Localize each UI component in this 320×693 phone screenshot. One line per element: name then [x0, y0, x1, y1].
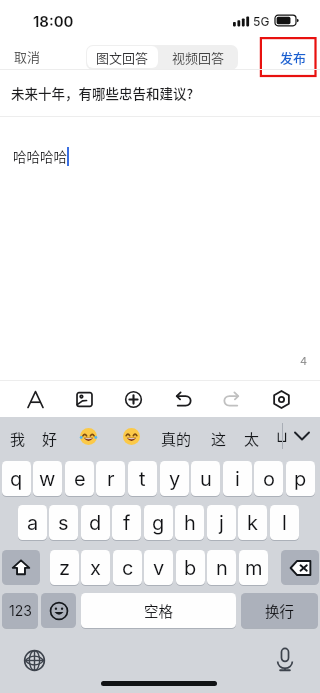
button[interactable]: Undo	[165, 381, 201, 417]
button[interactable]: c	[113, 550, 142, 585]
button[interactable]: v	[144, 550, 173, 585]
button[interactable]: h	[175, 505, 204, 540]
button[interactable]: i	[223, 461, 252, 496]
staticText: 太	[244, 428, 260, 450]
staticText: 视频回答	[172, 48, 225, 67]
button[interactable]: q	[2, 461, 31, 496]
button[interactable]: Settings	[263, 381, 299, 417]
button[interactable]: 真的	[158, 424, 195, 454]
staticText: u	[200, 467, 212, 491]
staticText: ⊔	[276, 428, 288, 445]
staticText: v	[153, 556, 165, 580]
staticText: z	[59, 556, 71, 580]
button[interactable]: t	[128, 461, 157, 496]
staticText: 未来十年，有哪些忠告和建议?	[11, 83, 194, 103]
button[interactable]: a	[18, 505, 47, 540]
button[interactable]: 好	[39, 424, 61, 454]
button[interactable]: 123	[2, 593, 38, 628]
button[interactable]: Change language	[22, 648, 46, 672]
button[interactable]: 空格	[81, 593, 236, 628]
button[interactable]: g	[144, 505, 173, 540]
button[interactable]: 我	[7, 424, 29, 454]
staticText: l	[282, 511, 287, 535]
staticText: 123	[9, 602, 32, 619]
button[interactable]: Shift	[2, 550, 40, 585]
staticText: r	[107, 467, 115, 491]
button[interactable]: 这	[208, 424, 230, 454]
staticText: 这	[211, 428, 227, 450]
button[interactable]: l	[270, 505, 299, 540]
button[interactable]: 发布	[273, 45, 314, 69]
button[interactable]: Emoji	[41, 593, 76, 628]
staticText: 取消	[14, 47, 41, 66]
button[interactable]: y	[160, 461, 189, 496]
staticText: e	[74, 467, 86, 491]
staticText: o	[263, 467, 275, 491]
button[interactable]: Hide keyboard	[290, 424, 314, 448]
button[interactable]: z	[50, 550, 79, 585]
staticText: f	[123, 511, 131, 535]
staticText: n	[216, 556, 228, 580]
staticText: c	[122, 556, 134, 580]
staticText: 哈哈哈哈	[13, 146, 67, 166]
staticText: j	[219, 511, 224, 535]
button[interactable]: e	[65, 461, 94, 496]
button[interactable]: m	[239, 550, 268, 585]
button[interactable]: Insert image	[66, 381, 102, 417]
button[interactable]: Insert	[115, 381, 151, 417]
staticText: 好	[42, 428, 58, 450]
button[interactable]: x	[81, 550, 110, 585]
staticText: a	[27, 511, 39, 535]
button[interactable]: j	[207, 505, 236, 540]
staticText: s	[58, 511, 69, 535]
staticText: k	[247, 511, 258, 535]
button[interactable]: p	[286, 461, 315, 496]
button[interactable]: 视频回答	[160, 46, 236, 68]
button[interactable]: w	[33, 461, 62, 496]
button[interactable]: Voice input	[274, 646, 296, 672]
staticText: 真的	[161, 428, 192, 450]
staticText: 我	[10, 428, 26, 450]
button[interactable]: n	[207, 550, 236, 585]
button[interactable]: Redo	[213, 381, 249, 417]
staticText: b	[184, 556, 197, 580]
button[interactable]: r	[96, 461, 125, 496]
button[interactable]: ⊔	[273, 424, 291, 449]
button[interactable]: o	[254, 461, 283, 496]
button[interactable]: 太	[241, 424, 263, 454]
staticText: p	[294, 467, 307, 491]
staticText: 空格	[144, 600, 173, 621]
staticText: d	[89, 511, 102, 535]
staticText: g	[152, 511, 165, 535]
button[interactable]: k	[238, 505, 267, 540]
staticText: h	[184, 511, 196, 535]
staticText: y	[169, 467, 181, 491]
staticText: 4	[300, 354, 308, 367]
staticText: 5G	[253, 14, 270, 29]
button[interactable]: 换行	[241, 593, 318, 628]
staticText: 18:00	[33, 12, 74, 30]
button[interactable]: Text style	[17, 381, 53, 417]
button[interactable]: 取消	[8, 44, 47, 68]
staticText: m	[245, 556, 263, 580]
button[interactable]: u	[191, 461, 220, 496]
staticText: w	[39, 467, 56, 491]
button[interactable]: f	[112, 505, 141, 540]
button[interactable]: d	[81, 505, 110, 540]
staticText: q	[10, 467, 23, 491]
staticText: 发布	[280, 48, 307, 67]
button[interactable]: 图文回答	[87, 46, 158, 68]
button[interactable]: b	[176, 550, 205, 585]
staticText: t	[139, 467, 146, 491]
button[interactable]: s	[49, 505, 78, 540]
button[interactable]: Backspace	[281, 550, 319, 585]
staticText: 换行	[265, 600, 294, 621]
staticText: x	[90, 556, 101, 580]
staticText: 图文回答	[96, 48, 149, 67]
staticText: i	[235, 467, 240, 491]
